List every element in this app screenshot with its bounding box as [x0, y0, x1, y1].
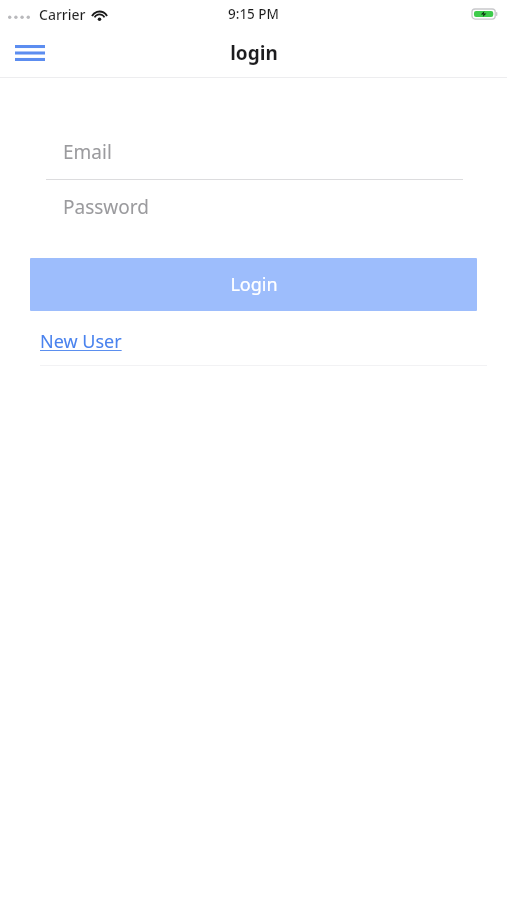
button[interactable]: Open navigation menu — [7, 30, 53, 76]
staticText: login — [230, 40, 278, 66]
staticText: 9:15 PM — [228, 5, 279, 23]
staticText: Carrier — [39, 5, 86, 24]
button[interactable]: Email — [0, 125, 507, 180]
staticText: Password — [63, 194, 149, 220]
button[interactable]: New User — [40, 329, 122, 354]
button[interactable]: Login — [30, 258, 477, 311]
staticText: Login — [230, 272, 278, 297]
staticText: Email — [63, 139, 112, 165]
staticText: New User — [40, 329, 122, 354]
button[interactable]: Password — [0, 180, 507, 235]
